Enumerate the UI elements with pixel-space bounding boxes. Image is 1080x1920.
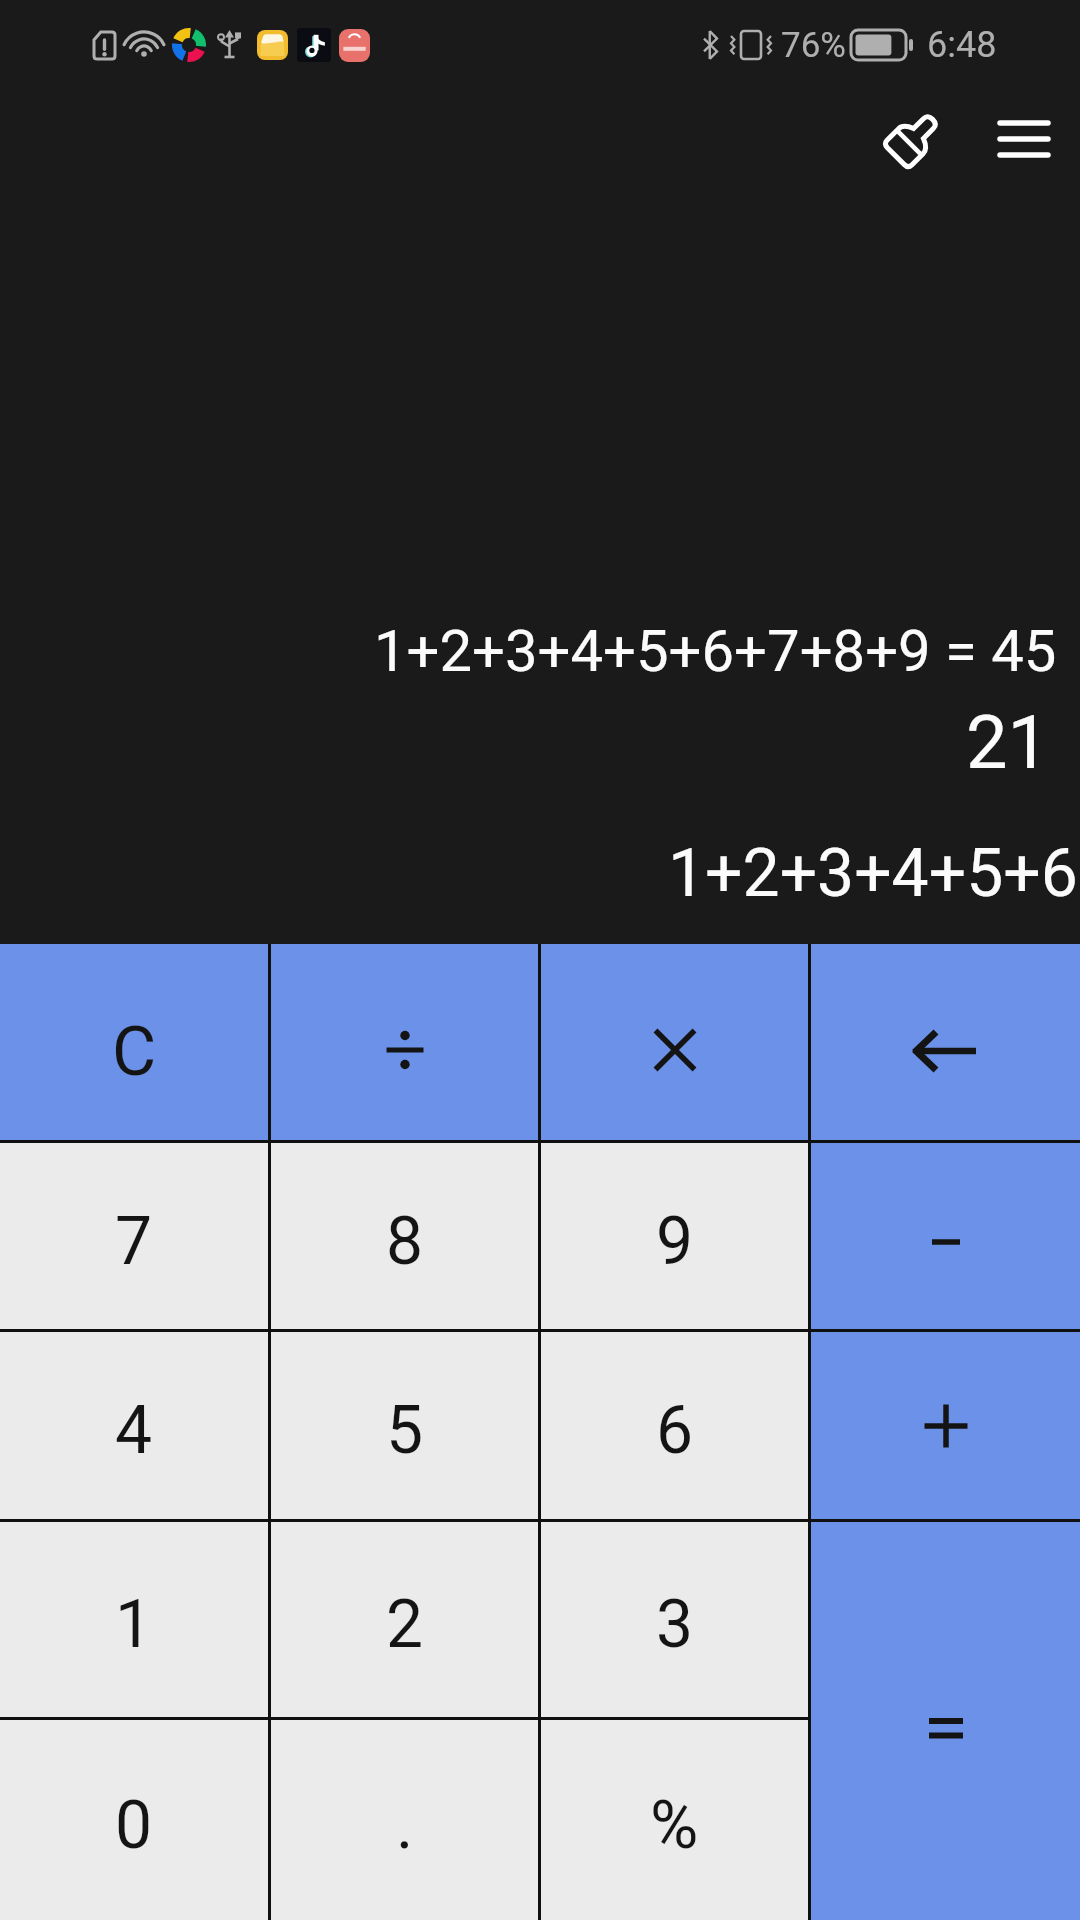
staticText: 3 [656,1586,694,1663]
staticText: 4 [115,1392,153,1469]
button[interactable]: % [541,1720,808,1920]
staticText: % [650,1787,699,1864]
button[interactable] [811,1143,1080,1329]
staticText: 76% [781,25,846,66]
button[interactable]: 3 [541,1522,808,1717]
button[interactable]: 7 [0,1143,268,1329]
button[interactable] [811,1522,1080,1920]
button[interactable] [811,1332,1080,1519]
staticText: 1+2+3+4+5+6+7+8+9 = 45 [374,617,1057,685]
staticText: 6 [656,1392,694,1469]
staticText: 7 [115,1203,153,1280]
staticText: 5 [386,1392,424,1469]
staticText: 8 [386,1203,424,1280]
button[interactable]: C [0,944,268,1140]
staticText: 21 [966,699,1050,786]
staticText: C [112,1012,157,1092]
staticText: 6:48 [927,24,997,66]
button[interactable]: . [271,1720,538,1920]
staticText: . [396,1787,414,1864]
button[interactable]: 9 [541,1143,808,1329]
button[interactable] [998,118,1050,170]
button[interactable]: 1 [0,1522,268,1717]
button[interactable]: 0 [0,1720,268,1920]
staticText: 1+2+3+4+5+6 [668,835,1078,912]
staticText: 2 [386,1586,424,1663]
button[interactable]: 8 [271,1143,538,1329]
button[interactable]: 6 [541,1332,808,1519]
button[interactable]: 5 [271,1332,538,1519]
button[interactable]: 4 [0,1332,268,1519]
staticText: 9 [656,1203,694,1280]
staticText: 1 [115,1586,153,1663]
button[interactable] [811,944,1080,1140]
button[interactable] [541,944,808,1140]
staticText: 0 [115,1787,153,1864]
button[interactable] [878,110,942,174]
button[interactable] [271,944,538,1140]
button[interactable]: 2 [271,1522,538,1717]
